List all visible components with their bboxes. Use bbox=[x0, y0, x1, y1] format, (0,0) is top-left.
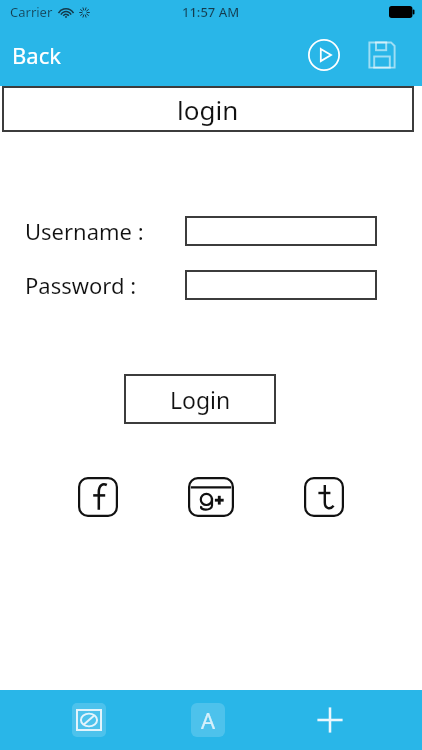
button[interactable]: Sign in with Google Plus bbox=[188, 474, 234, 520]
button[interactable] bbox=[185, 216, 377, 246]
button[interactable]: Image bbox=[72, 703, 106, 737]
staticText: Back bbox=[12, 40, 61, 70]
button[interactable]: Sign in with Facebook bbox=[75, 474, 121, 520]
button[interactable]: Login bbox=[124, 374, 276, 424]
staticText: Username : bbox=[25, 216, 144, 246]
button[interactable]: Sign in with Tumblr bbox=[301, 474, 347, 520]
staticText: Password : bbox=[25, 270, 137, 300]
button[interactable]: Save bbox=[360, 33, 404, 77]
button[interactable] bbox=[185, 270, 377, 300]
button[interactable]: Play bbox=[302, 33, 346, 77]
button[interactable]: Back bbox=[0, 34, 73, 76]
staticText: Carrier bbox=[10, 3, 53, 21]
staticText: A bbox=[201, 705, 216, 735]
button[interactable]: Text bbox=[191, 703, 225, 737]
staticText: Login bbox=[170, 384, 231, 415]
staticText: login bbox=[177, 92, 239, 127]
staticText: 11:57 AM bbox=[182, 3, 240, 21]
button[interactable]: Add bbox=[310, 700, 350, 740]
